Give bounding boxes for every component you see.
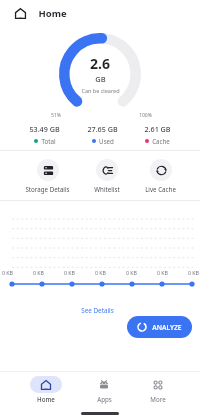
staticText: ANALYZE [152, 323, 182, 332]
staticText: Home [38, 7, 67, 20]
button[interactable]: 53.49 GB [27, 124, 62, 145]
staticText: 0 KB [2, 269, 13, 276]
staticText: 27.65 GB [87, 124, 118, 134]
button[interactable]: 27.65 GB [85, 124, 120, 145]
staticText: 2.6 [90, 54, 110, 73]
staticText: Home [37, 395, 55, 403]
staticText: Can be cleared [81, 87, 120, 94]
staticText: See Details [81, 306, 114, 315]
staticText: 0 KB [157, 269, 168, 276]
staticText: 100% [139, 112, 152, 119]
staticText: Apps [97, 395, 112, 403]
staticText: 0 KB [95, 269, 106, 276]
button[interactable]: ANALYZE [127, 316, 192, 338]
button[interactable]: 2.61 GB [142, 124, 173, 145]
button[interactable]: See Details [78, 303, 117, 318]
staticText: Cache [152, 137, 170, 145]
button[interactable]: Home [11, 4, 29, 22]
staticText: 0 KB [188, 269, 199, 276]
button[interactable]: More [146, 376, 170, 403]
staticText: Storage Details [25, 185, 70, 193]
button[interactable]: Whitelist [94, 159, 120, 193]
staticText: More [150, 395, 166, 403]
button[interactable]: Home [30, 376, 62, 403]
staticText: Live Cache [145, 185, 176, 193]
staticText: 0 KB [33, 269, 44, 276]
staticText: 2.61 GB [144, 124, 171, 134]
staticText: 53.49 GB [29, 124, 60, 134]
staticText: GB [95, 74, 106, 84]
button[interactable]: Live Cache [145, 159, 176, 193]
staticText: Used [99, 137, 114, 145]
staticText: Total [41, 137, 56, 145]
button[interactable]: Storage Details [25, 159, 70, 193]
staticText: 0 KB [64, 269, 75, 276]
staticText: 0 KB [126, 269, 137, 276]
staticText: 51% [51, 112, 61, 119]
staticText: Whitelist [94, 185, 120, 193]
button[interactable]: Apps [92, 376, 116, 403]
